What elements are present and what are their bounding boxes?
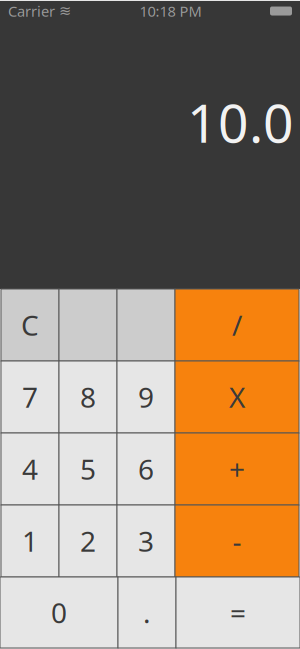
button[interactable]: 5: [59, 433, 117, 505]
button[interactable]: /: [175, 289, 299, 361]
button[interactable]: X: [175, 361, 299, 433]
staticText: ≋: [59, 3, 71, 19]
button[interactable]: 4: [1, 433, 59, 505]
staticText: 1: [22, 522, 38, 560]
button[interactable]: 9: [117, 361, 175, 433]
button[interactable]: 7: [1, 361, 59, 433]
button[interactable]: [59, 289, 117, 361]
button[interactable]: 1: [1, 505, 59, 577]
staticText: 9: [138, 378, 154, 416]
button[interactable]: C: [1, 289, 59, 361]
button[interactable]: +: [175, 433, 299, 505]
staticText: C: [21, 306, 39, 344]
staticText: +: [229, 450, 245, 488]
staticText: -: [232, 522, 241, 560]
staticText: 4: [22, 450, 38, 488]
staticText: 10:18 PM: [139, 1, 201, 21]
staticText: 10.0: [187, 87, 294, 157]
staticText: Carrier: [8, 1, 55, 21]
staticText: 0: [51, 594, 67, 631]
staticText: 8: [80, 378, 96, 416]
staticText: =: [230, 594, 246, 631]
staticText: 2: [80, 522, 96, 560]
button[interactable]: 8: [59, 361, 117, 433]
button[interactable]: 6: [117, 433, 175, 505]
staticText: /: [232, 306, 242, 344]
button[interactable]: -: [175, 505, 299, 577]
staticText: 5: [80, 450, 96, 488]
staticText: 6: [138, 450, 154, 488]
staticText: .: [143, 594, 151, 631]
button[interactable]: [117, 289, 175, 361]
staticText: 3: [138, 522, 154, 560]
button[interactable]: =: [176, 577, 300, 648]
staticText: X: [229, 378, 245, 416]
button[interactable]: 2: [59, 505, 117, 577]
button[interactable]: .: [118, 577, 176, 648]
button[interactable]: 3: [117, 505, 175, 577]
button[interactable]: 0: [0, 577, 118, 648]
staticText: 7: [22, 378, 38, 416]
